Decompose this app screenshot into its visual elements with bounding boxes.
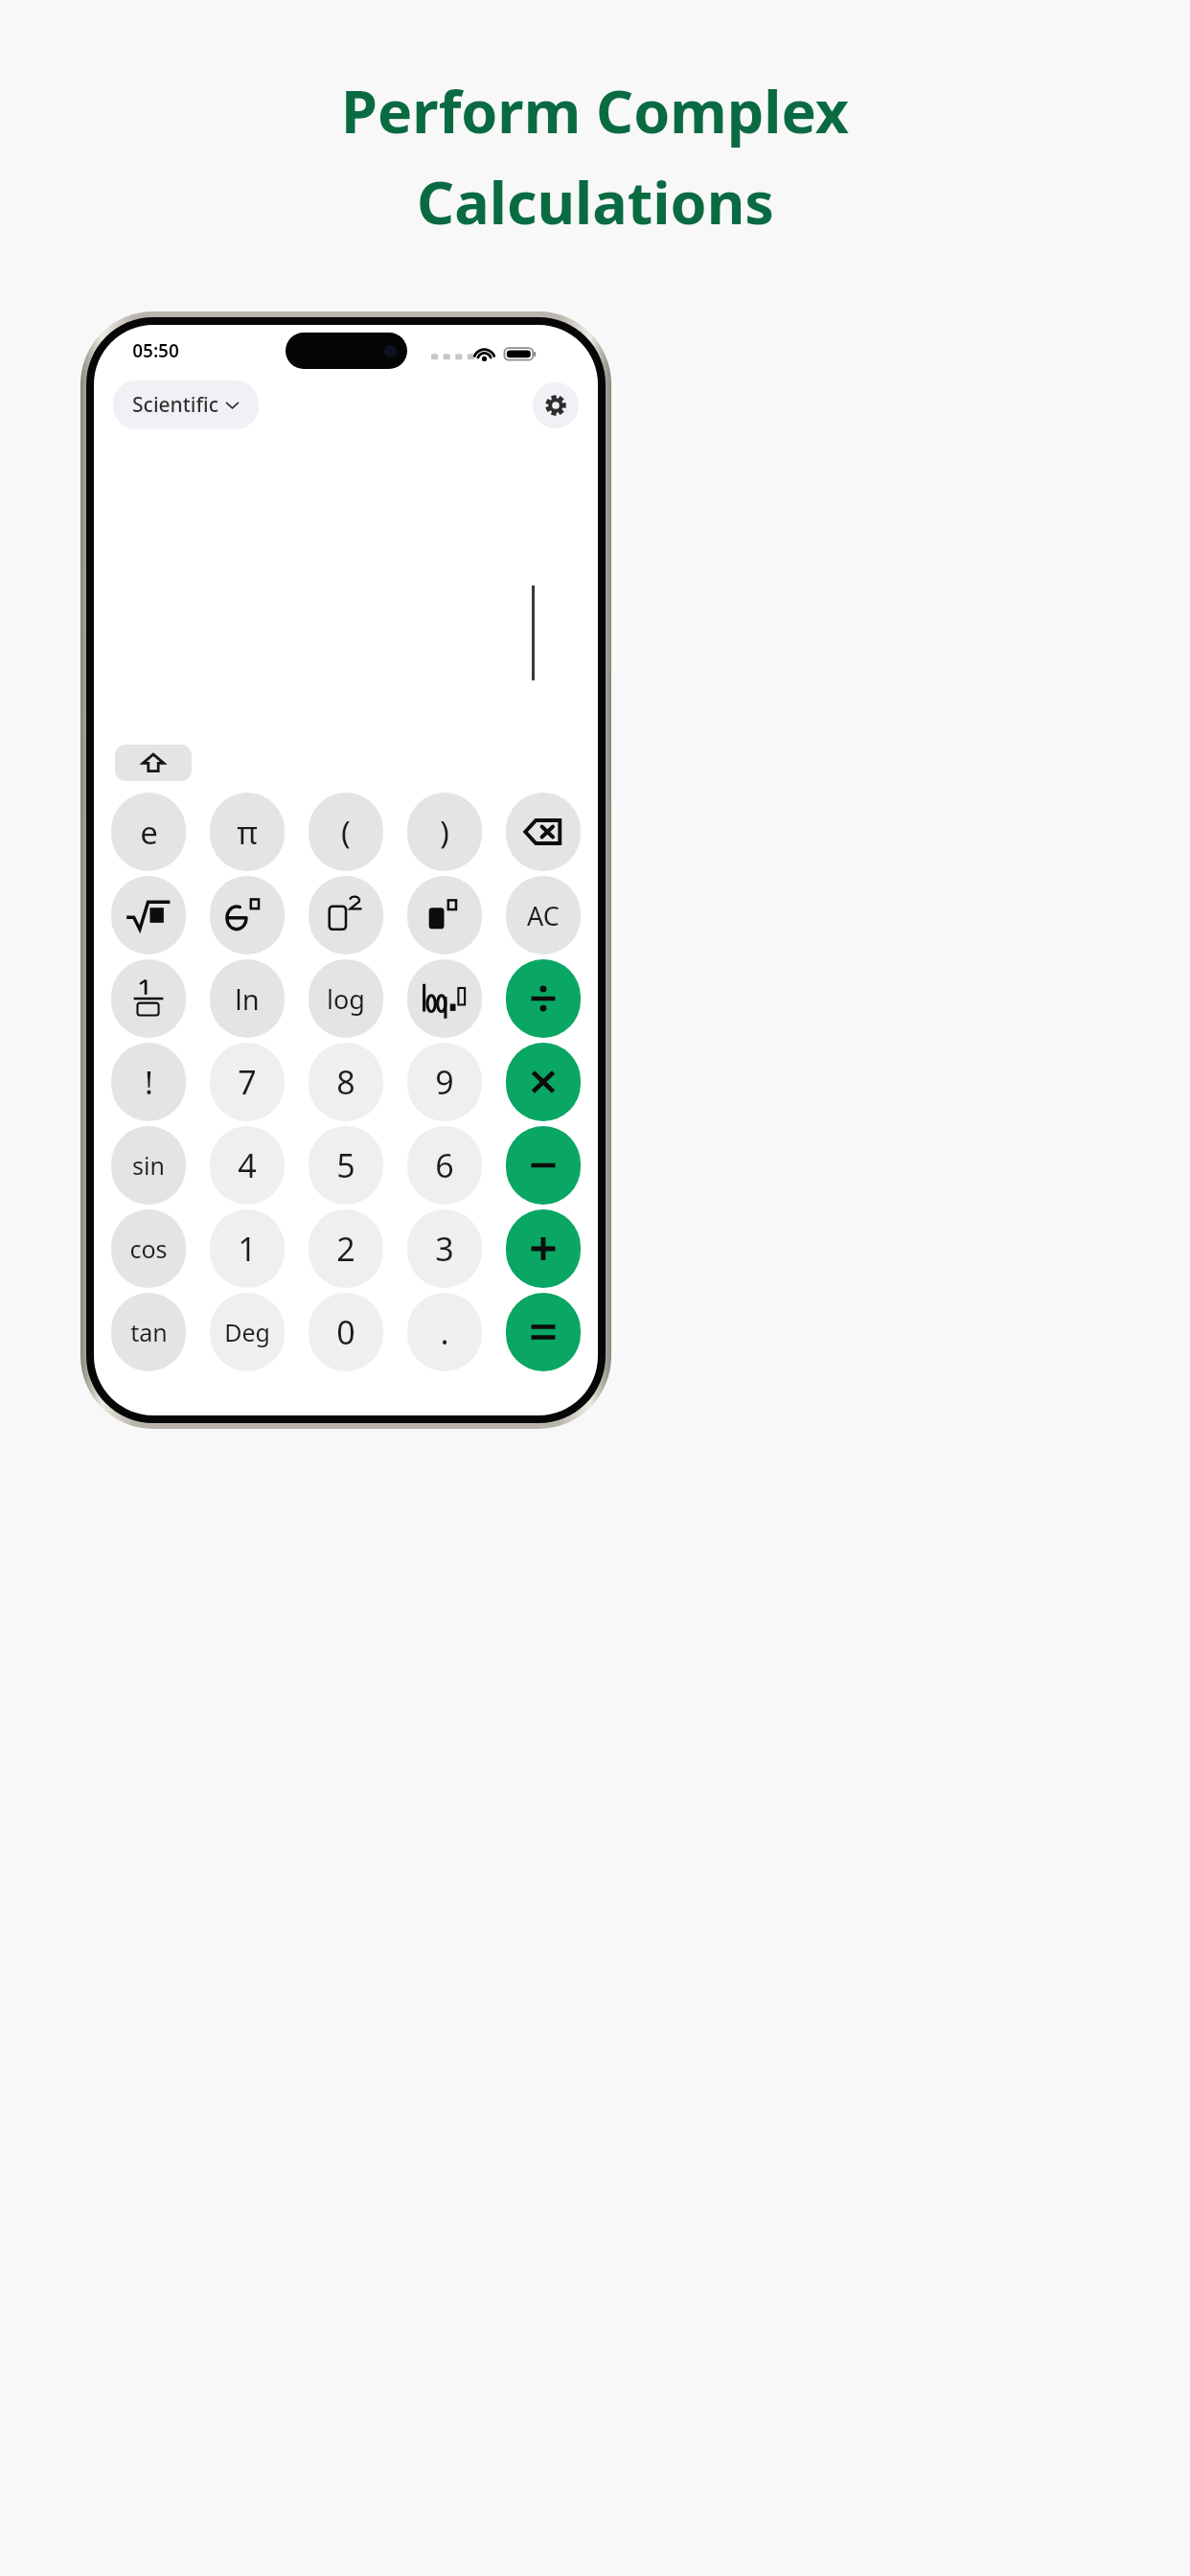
staticText: 4 xyxy=(238,1143,257,1187)
button[interactable]: Multiply xyxy=(506,1043,581,1121)
button[interactable]: log xyxy=(309,959,383,1038)
button[interactable]: ( xyxy=(309,793,383,871)
staticText: 9 xyxy=(435,1060,454,1104)
button[interactable]: Subtract xyxy=(506,1126,581,1205)
button[interactable]: 5 xyxy=(309,1126,383,1205)
staticText: . xyxy=(440,1310,449,1354)
button[interactable]: Power xyxy=(407,876,482,954)
button[interactable]: . xyxy=(407,1293,482,1371)
button[interactable]: Divide xyxy=(506,959,581,1038)
staticText: AC xyxy=(527,898,560,933)
button[interactable]: Equals xyxy=(506,1293,581,1371)
staticText: 8 xyxy=(336,1060,355,1104)
staticText: Calculations xyxy=(417,162,774,241)
button[interactable]: cos xyxy=(111,1209,186,1288)
button[interactable]: π xyxy=(210,793,285,871)
button[interactable]: Square xyxy=(309,876,383,954)
staticText: Perform Complex xyxy=(341,71,849,150)
staticText: 2 xyxy=(336,1227,355,1271)
button[interactable]: 6 xyxy=(407,1126,482,1205)
button[interactable]: ln xyxy=(210,959,285,1038)
staticText: cos xyxy=(129,1232,168,1265)
button[interactable]: e to the power xyxy=(210,876,285,954)
staticText: 0 xyxy=(336,1310,355,1354)
staticText: 1 xyxy=(238,1227,257,1271)
button[interactable]: 7 xyxy=(210,1043,285,1121)
button[interactable]: 8 xyxy=(309,1043,383,1121)
button[interactable]: 4 xyxy=(210,1126,285,1205)
staticText: π xyxy=(237,811,258,854)
button[interactable]: e xyxy=(111,793,186,871)
staticText: 5 xyxy=(336,1143,355,1187)
button[interactable]: Log base xyxy=(407,959,482,1038)
staticText: 6 xyxy=(435,1143,454,1187)
staticText: sin xyxy=(132,1149,165,1182)
staticText: Scientific xyxy=(132,391,218,419)
staticText: 7 xyxy=(238,1060,257,1104)
button[interactable]: Reciprocal xyxy=(111,959,186,1038)
staticText: e xyxy=(140,811,158,854)
button[interactable]: Backspace xyxy=(506,793,581,871)
button[interactable]: 9 xyxy=(407,1043,482,1121)
button[interactable]: Deg xyxy=(210,1293,285,1371)
staticText: ( xyxy=(341,811,351,854)
staticText: 3 xyxy=(435,1227,454,1271)
button[interactable]: 1 xyxy=(210,1209,285,1288)
button[interactable]: ) xyxy=(407,793,482,871)
button[interactable]: 3 xyxy=(407,1209,482,1288)
button[interactable]: Scientific xyxy=(113,380,259,429)
staticText: ! xyxy=(145,1061,153,1104)
staticText: ) xyxy=(440,811,449,854)
button[interactable]: sin xyxy=(111,1126,186,1205)
button[interactable]: Square root xyxy=(111,876,186,954)
button[interactable]: Shift xyxy=(115,745,192,781)
button[interactable]: AC xyxy=(506,876,581,954)
button[interactable]: ! xyxy=(111,1043,186,1121)
button[interactable]: 0 xyxy=(309,1293,383,1371)
button[interactable]: Add xyxy=(506,1209,581,1288)
button[interactable]: Settings xyxy=(533,382,579,428)
staticText: tan xyxy=(130,1316,168,1348)
staticText: log xyxy=(327,981,365,1017)
button[interactable]: 2 xyxy=(309,1209,383,1288)
staticText: 05:50 xyxy=(132,338,179,363)
button[interactable]: tan xyxy=(111,1293,186,1371)
staticText: Deg xyxy=(224,1316,270,1348)
staticText: ln xyxy=(235,980,260,1018)
